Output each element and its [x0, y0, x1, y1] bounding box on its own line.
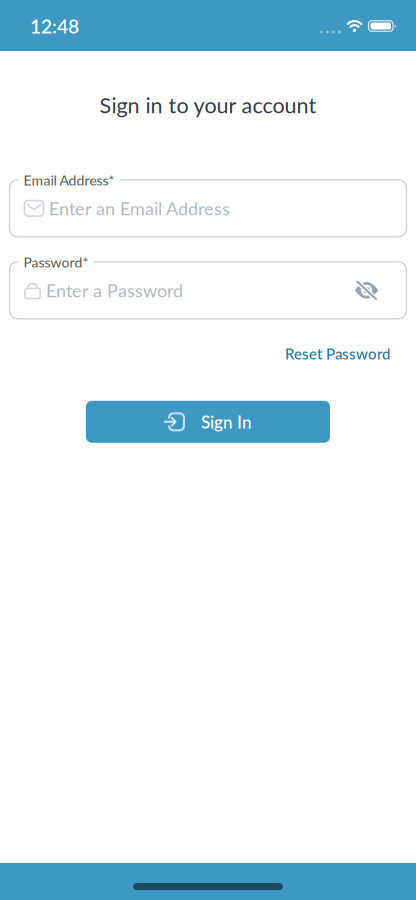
staticText: 12:48 [30, 14, 79, 37]
staticText: Sign In [201, 412, 252, 432]
staticText: Enter an Email Address [49, 197, 230, 219]
staticText: Reset Password [285, 345, 390, 363]
button[interactable]: Show password [354, 281, 392, 299]
button[interactable]: Reset Password [285, 345, 390, 363]
button[interactable]: Sign In [86, 401, 330, 443]
staticText: Email Address* [23, 172, 114, 189]
staticText: Enter a Password [46, 279, 183, 301]
staticText: Sign in to your account [99, 92, 316, 118]
staticText: Password* [23, 254, 88, 271]
